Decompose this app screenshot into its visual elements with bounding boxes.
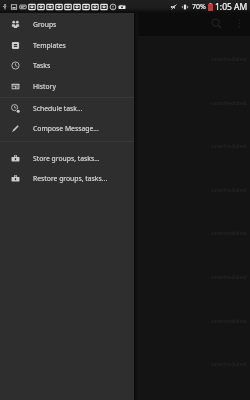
staticText: 70% — [192, 2, 206, 12]
button[interactable]: Tasks — [0, 55, 134, 75]
button[interactable]: History — [0, 76, 134, 96]
staticText: unscheduled — [211, 186, 247, 194]
staticText: unscheduled — [211, 99, 247, 107]
staticText: unscheduled — [211, 360, 247, 368]
button[interactable]: Store groups, tasks... — [0, 148, 134, 168]
staticText: Tasks — [33, 61, 51, 70]
staticText: Store groups, tasks... — [33, 154, 100, 163]
button[interactable]: Restore groups, tasks... — [0, 168, 134, 188]
staticText: Compose Message... — [33, 124, 99, 133]
staticText: unscheduled — [211, 229, 247, 237]
button[interactable]: Templates — [0, 35, 134, 55]
staticText: unscheduled — [211, 273, 247, 281]
staticText: unscheduled — [211, 55, 247, 63]
button[interactable]: Groups — [0, 14, 134, 34]
button[interactable]: Schedule task... — [0, 98, 134, 118]
staticText: unscheduled — [211, 317, 247, 325]
staticText: Restore groups, tasks... — [33, 174, 108, 183]
staticText: Templates — [33, 41, 66, 50]
staticText: History — [33, 82, 56, 91]
staticText: 1:05 AM — [215, 1, 248, 13]
staticText: unscheduled — [211, 142, 247, 150]
staticText: Groups — [33, 20, 57, 29]
staticText: Schedule task... — [33, 104, 83, 113]
button[interactable]: Compose Message... — [0, 118, 134, 138]
button[interactable]: Search — [205, 12, 227, 34]
